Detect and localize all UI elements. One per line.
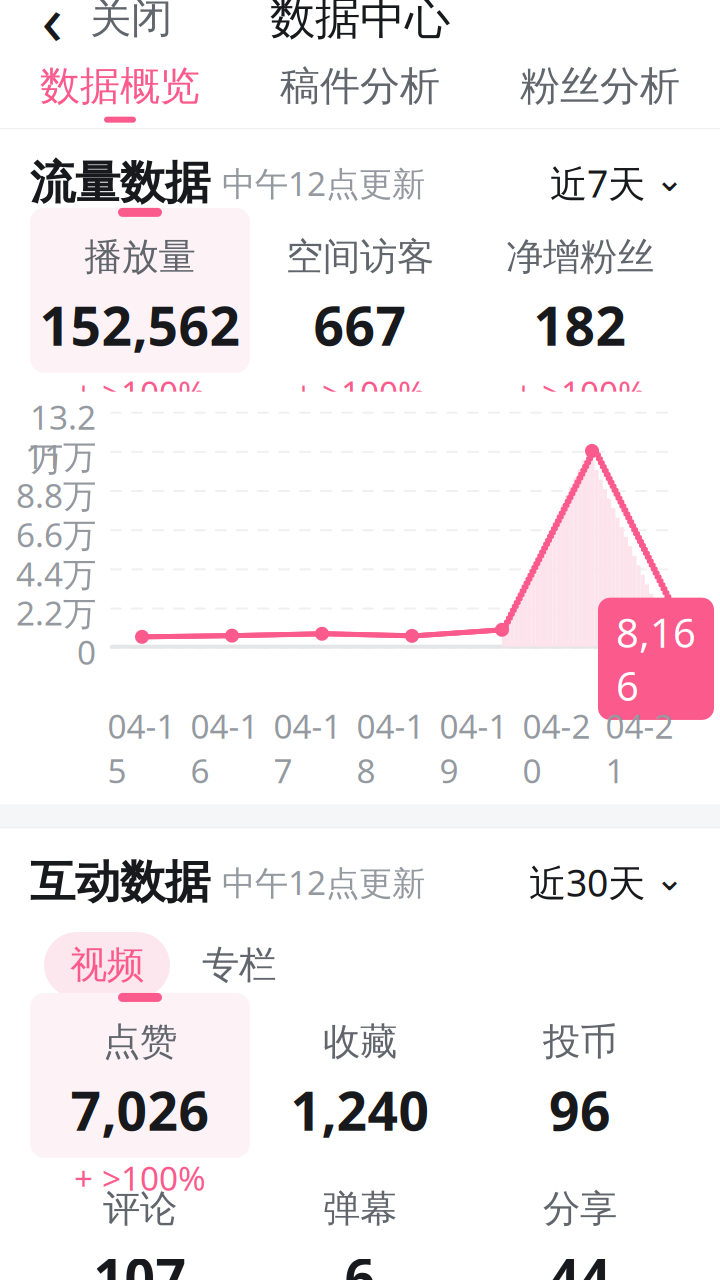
staticText: 7,026 bbox=[70, 1075, 209, 1146]
staticText: 播放量 bbox=[84, 234, 195, 280]
button[interactable]: 播放量 bbox=[30, 229, 250, 394]
button[interactable]: 空间访客 bbox=[250, 229, 470, 394]
staticText: 04-18 bbox=[356, 704, 424, 792]
button[interactable]: 粉丝分析 bbox=[480, 56, 720, 128]
button[interactable]: 评论 bbox=[30, 1181, 250, 1280]
staticText: 投币 bbox=[543, 1019, 617, 1065]
staticText: 分享 bbox=[543, 1186, 617, 1232]
staticText: 近30天 bbox=[529, 857, 645, 907]
staticText: 13.2万 bbox=[30, 395, 96, 480]
button[interactable]: 稿件分析 bbox=[240, 56, 480, 128]
staticText: 弹幕 bbox=[323, 1186, 397, 1232]
staticText: 收藏 bbox=[323, 1019, 397, 1065]
staticText: 中午12点更新 bbox=[222, 161, 425, 205]
staticText: 667 bbox=[313, 290, 406, 360]
staticText: 稿件分析 bbox=[280, 62, 440, 111]
staticText: ⌄ bbox=[655, 858, 684, 898]
staticText: 点赞 bbox=[103, 1019, 177, 1065]
staticText: 视频 bbox=[70, 942, 144, 988]
staticText: 182 bbox=[533, 290, 626, 360]
staticText: 6.6万 bbox=[16, 512, 96, 556]
staticText: 11万 bbox=[25, 434, 96, 478]
staticText: 44 bbox=[549, 1242, 611, 1280]
staticText: ‹ bbox=[41, 0, 62, 64]
button[interactable]: 数据概览 bbox=[0, 56, 240, 128]
staticText: 净增粉丝 bbox=[506, 234, 654, 280]
staticText: 空间访客 bbox=[286, 234, 434, 280]
staticText: 数据概览 bbox=[40, 62, 200, 111]
button[interactable]: 专栏 bbox=[188, 932, 290, 998]
staticText: 近7天 bbox=[550, 158, 645, 208]
staticText: + >100% bbox=[74, 1156, 206, 1200]
button[interactable]: 投币 bbox=[470, 1014, 690, 1179]
button[interactable]: 收藏 bbox=[250, 1014, 470, 1179]
button[interactable]: 关闭 bbox=[80, 0, 182, 53]
staticText: + >100% bbox=[74, 370, 206, 415]
staticText: ⌄ bbox=[655, 159, 684, 199]
staticText: 1,240 bbox=[290, 1075, 429, 1146]
staticText: 04-20 bbox=[522, 704, 590, 792]
staticText: + >100% bbox=[294, 370, 426, 415]
staticText: 中午12点更新 bbox=[222, 860, 425, 904]
staticText: 04-16 bbox=[190, 704, 258, 792]
staticText: 96 bbox=[549, 1075, 611, 1146]
staticText: 0 bbox=[77, 630, 96, 674]
button[interactable]: 近30天 bbox=[523, 857, 690, 907]
staticText: 04-17 bbox=[273, 704, 341, 792]
staticText: 8.8万 bbox=[16, 473, 96, 517]
staticText: + >100% bbox=[514, 370, 646, 415]
staticText: 107 bbox=[93, 1242, 186, 1280]
staticText: 04-15 bbox=[107, 704, 175, 792]
staticText: 流量数据 bbox=[30, 155, 210, 211]
staticText: 4.4万 bbox=[16, 551, 96, 596]
button[interactable]: 点赞 bbox=[30, 1014, 250, 1179]
button[interactable]: 弹幕 bbox=[250, 1181, 470, 1280]
button[interactable]: 视频 bbox=[44, 932, 170, 998]
button[interactable]: 净增粉丝 bbox=[470, 229, 690, 394]
staticText: 关闭 bbox=[90, 0, 172, 43]
staticText: 6 bbox=[344, 1242, 375, 1280]
staticText: 专栏 bbox=[202, 942, 276, 988]
staticText: 04-21 bbox=[605, 704, 673, 792]
staticText: 04-19 bbox=[439, 704, 507, 792]
button[interactable]: 返回 bbox=[24, 0, 80, 53]
staticText: 2.2万 bbox=[16, 590, 96, 635]
button[interactable]: 近7天 bbox=[544, 158, 690, 208]
staticText: 互动数据 bbox=[30, 854, 210, 910]
staticText: 8,166 bbox=[616, 606, 696, 712]
button[interactable]: 分享 bbox=[470, 1181, 690, 1280]
staticText: 评论 bbox=[103, 1186, 177, 1232]
staticText: 粉丝分析 bbox=[520, 62, 680, 111]
staticText: 数据中心 bbox=[270, 0, 450, 46]
staticText: 152,562 bbox=[39, 290, 240, 360]
